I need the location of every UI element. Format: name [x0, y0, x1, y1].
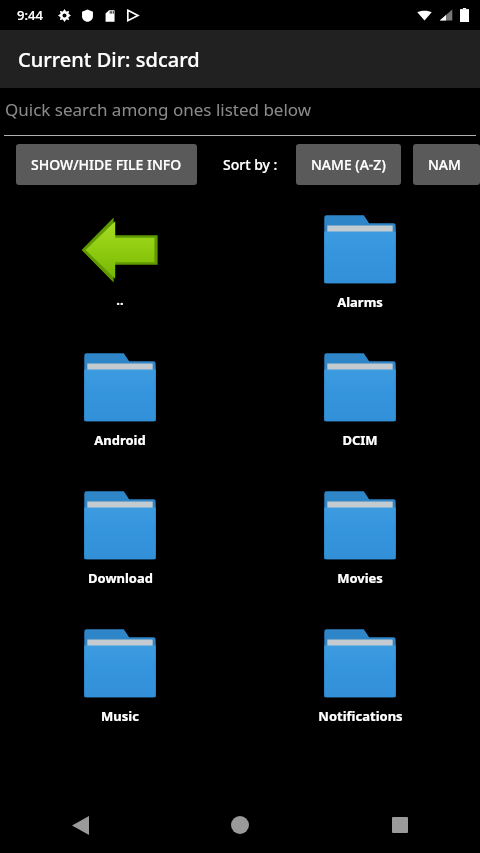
staticText: DCIM: [342, 431, 378, 449]
button[interactable]: Download: [45, 482, 195, 587]
staticText: NAME (Z-A): [428, 155, 465, 174]
button[interactable]: Notifications: [285, 620, 435, 725]
staticText: ..: [116, 291, 124, 309]
button[interactable]: Movies: [285, 482, 435, 587]
button[interactable]: Android: [45, 344, 195, 449]
staticText: Quick search among ones listed below: [5, 98, 312, 121]
button[interactable]: Quick search among ones listed below: [0, 88, 480, 136]
staticText: Notifications: [318, 707, 403, 725]
button[interactable]: Up one directory: [45, 206, 195, 309]
staticText: Current Dir: sdcard: [18, 46, 200, 73]
staticText: NAME (A-Z): [311, 155, 386, 174]
other: Up one directory: [80, 213, 160, 287]
button[interactable]: DCIM: [285, 344, 435, 449]
button[interactable]: NAME (Z-A): [413, 144, 480, 185]
staticText: Music: [101, 707, 139, 725]
staticText: Download: [88, 569, 153, 587]
button[interactable]: Alarms: [285, 206, 435, 311]
staticText: SHOW/HIDE FILE INFO: [31, 155, 182, 174]
button[interactable]: Music: [45, 620, 195, 725]
staticText: Sort by :: [223, 155, 278, 174]
button[interactable]: Back: [56, 801, 104, 849]
staticText: Android: [94, 431, 146, 449]
staticText: Movies: [337, 569, 383, 587]
button[interactable]: Recent apps: [376, 801, 424, 849]
button[interactable]: NAME (A-Z): [296, 144, 401, 185]
button[interactable]: Home: [216, 801, 264, 849]
button[interactable]: SHOW/HIDE FILE INFO: [16, 144, 197, 185]
staticText: Alarms: [337, 293, 383, 311]
staticText: 9:44: [17, 6, 43, 24]
